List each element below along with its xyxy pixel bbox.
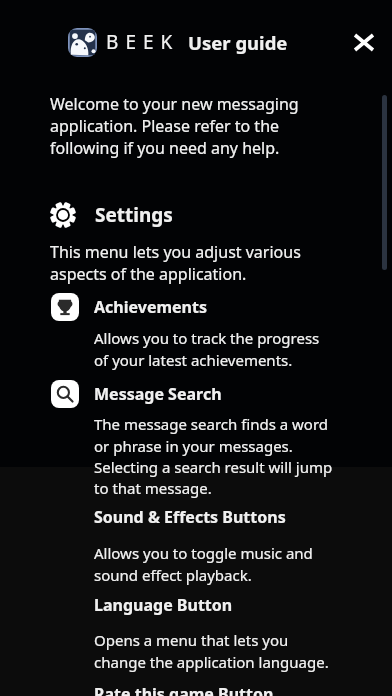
button[interactable]: App icon: [68, 28, 97, 57]
staticText: Opens a menu that lets you change the ap…: [94, 630, 335, 672]
staticText: Sound & Effects Buttons: [94, 506, 286, 528]
staticText: This menu lets you adjust various aspect…: [50, 241, 305, 285]
staticText: Allows you to toggle music and sound eff…: [94, 543, 335, 585]
staticText: Language Button: [94, 594, 233, 616]
staticText: Achievements: [94, 296, 207, 318]
staticText: User guide: [188, 30, 288, 55]
staticText: Welcome to your new messaging applicatio…: [50, 93, 305, 159]
staticText: Allows you to track the progress of your…: [94, 328, 335, 370]
staticText: Settings: [95, 202, 173, 228]
staticText: Message Search: [94, 383, 222, 405]
button[interactable]: Achievements: [51, 293, 79, 321]
button[interactable]: Close: [345, 23, 383, 61]
staticText: The message search finds a word or phras…: [94, 414, 335, 498]
staticText: Rate this game Button: [94, 683, 274, 696]
staticText: B E E K: [106, 29, 174, 55]
button[interactable]: Message Search: [51, 380, 79, 408]
